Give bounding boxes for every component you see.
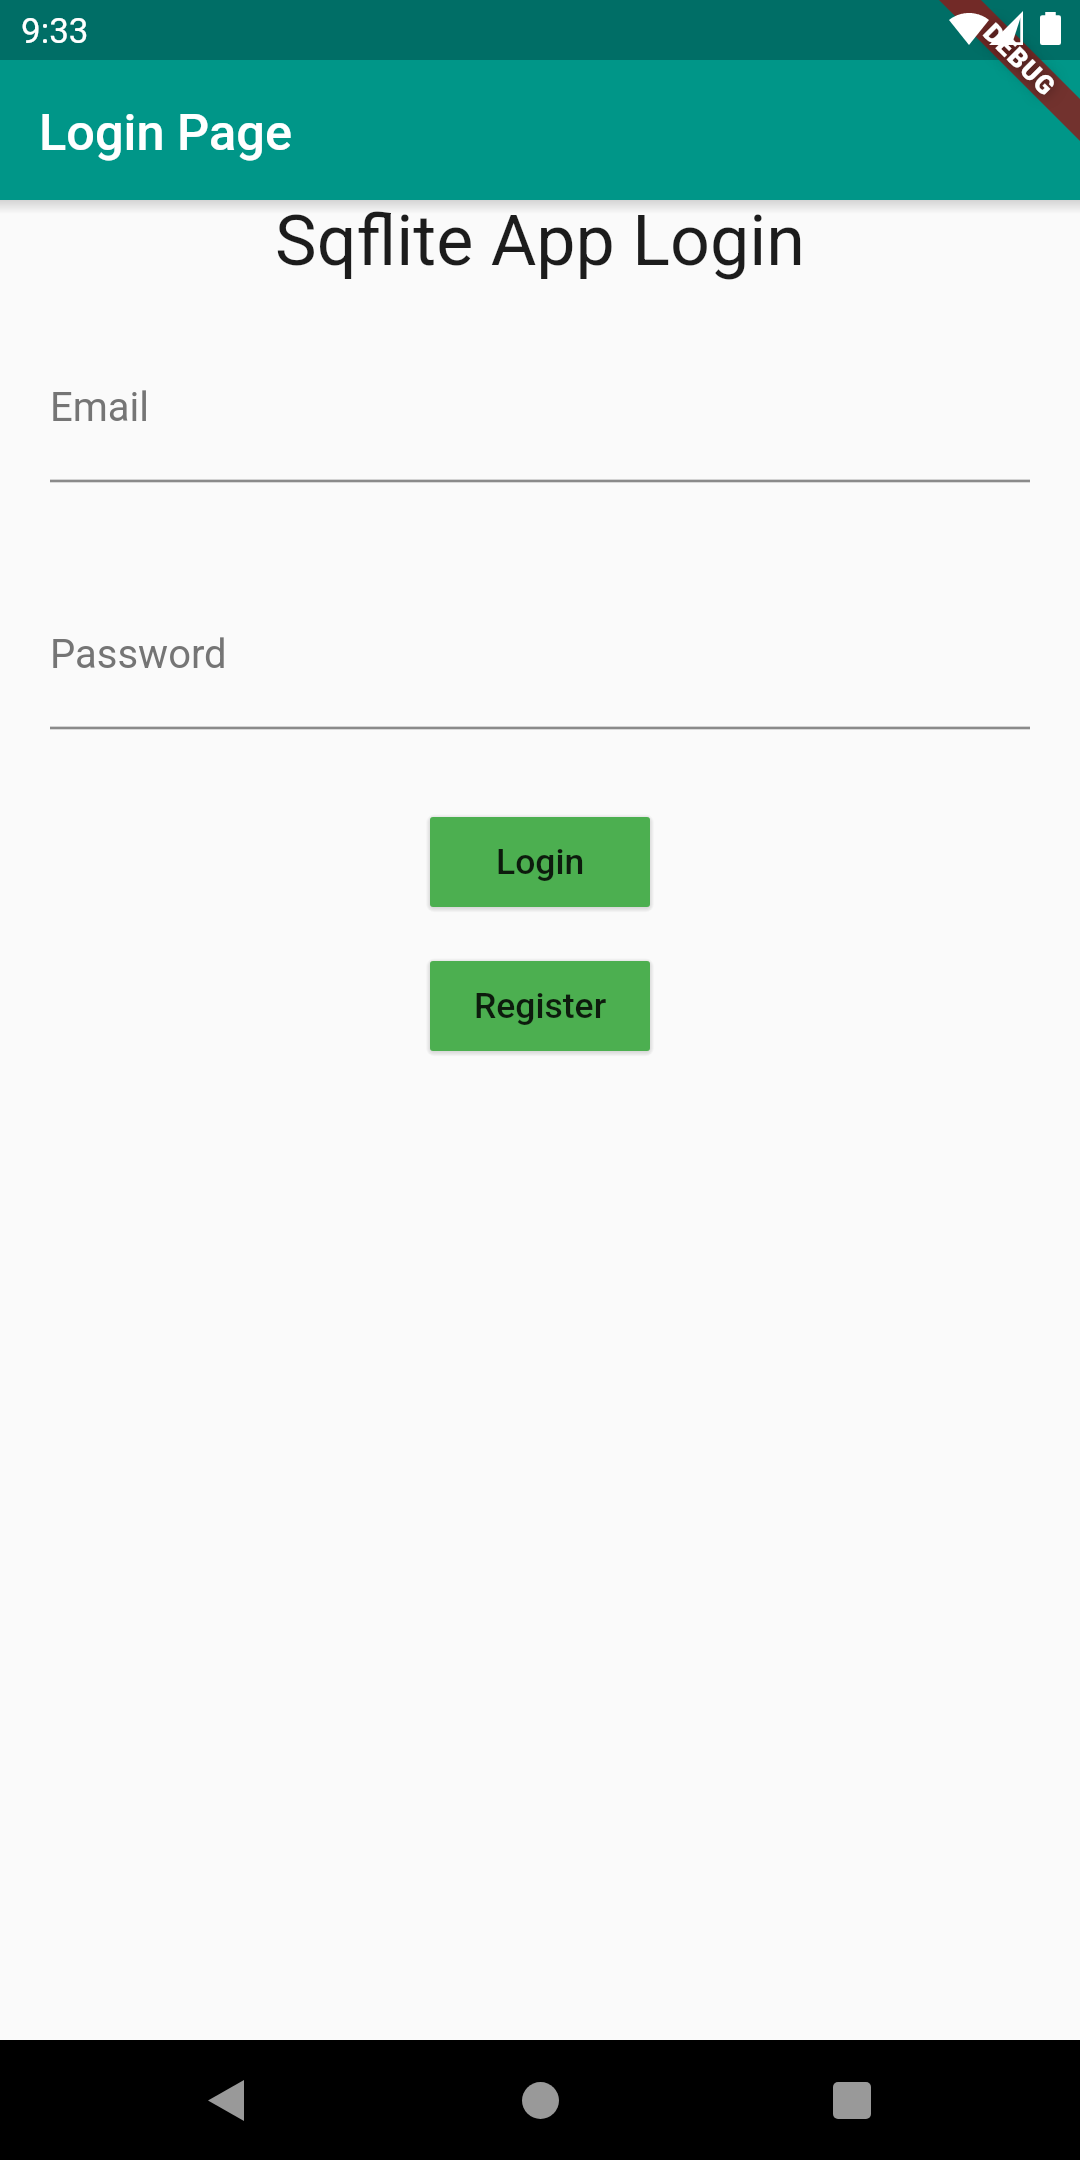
button[interactable]: Email [50,383,1030,483]
staticText: Register [474,985,607,1027]
staticText: Login [496,841,585,883]
staticText: Login Page [39,103,292,162]
staticText: Password [50,631,227,678]
button[interactable]: Password [50,630,1030,730]
button[interactable]: Recent apps [802,2050,902,2150]
staticText: Sqflite App Login [0,200,1080,282]
button[interactable]: Login [430,817,650,907]
staticText: DEBUG [978,18,1062,102]
staticText: 9:33 [21,11,89,52]
button[interactable]: Register [430,961,650,1051]
button[interactable]: Home [490,2050,590,2150]
button[interactable]: Back [176,2050,276,2150]
staticText: Email [50,384,150,431]
